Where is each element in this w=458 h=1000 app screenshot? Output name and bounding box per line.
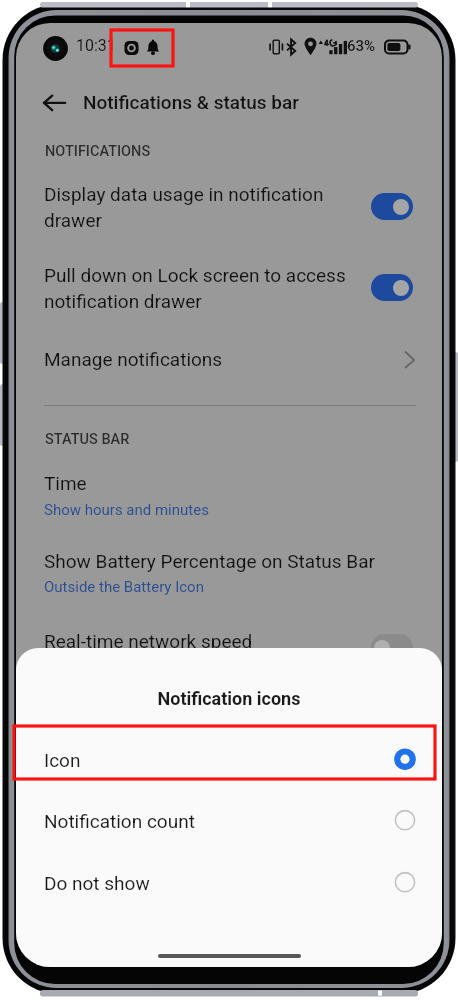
staticText: Pull down on Lock screen to access notif…	[44, 264, 362, 313]
staticText: STATUS BAR	[45, 431, 130, 448]
staticText: 63%	[347, 37, 376, 55]
staticText: Notifications & status bar	[83, 91, 300, 113]
button[interactable]: Display data usage in notification drawe…	[16, 167, 442, 245]
staticText: Real-time network speed	[44, 630, 253, 652]
staticText: Notification count	[44, 810, 195, 832]
staticText: Manage notifications	[44, 348, 223, 370]
button[interactable]: Do not show	[16, 851, 442, 913]
staticText: Time	[44, 472, 87, 494]
staticText: NOTIFICATIONS	[45, 143, 151, 160]
button[interactable]: Show Battery Percentage on Status Bar	[16, 534, 442, 598]
button[interactable]: Back	[24, 81, 68, 125]
button[interactable]: Time	[16, 456, 442, 520]
staticText: Do not show	[44, 872, 150, 894]
staticText: Show hours and minutes	[44, 501, 209, 519]
staticText: Icon	[44, 749, 81, 771]
button[interactable]: Notification count	[16, 789, 442, 851]
button[interactable]: Manage notifications	[16, 332, 442, 382]
staticText: Show Battery Percentage on Status Bar	[44, 550, 375, 572]
staticText: Outside the Battery Icon	[44, 578, 204, 596]
staticText: Display data usage in notification drawe…	[44, 183, 362, 232]
button[interactable]: Pull down on Lock screen to access notif…	[16, 248, 442, 326]
staticText: Notification icons	[16, 688, 442, 709]
staticText: 10:31	[76, 36, 116, 55]
button[interactable]: Icon	[16, 728, 442, 790]
